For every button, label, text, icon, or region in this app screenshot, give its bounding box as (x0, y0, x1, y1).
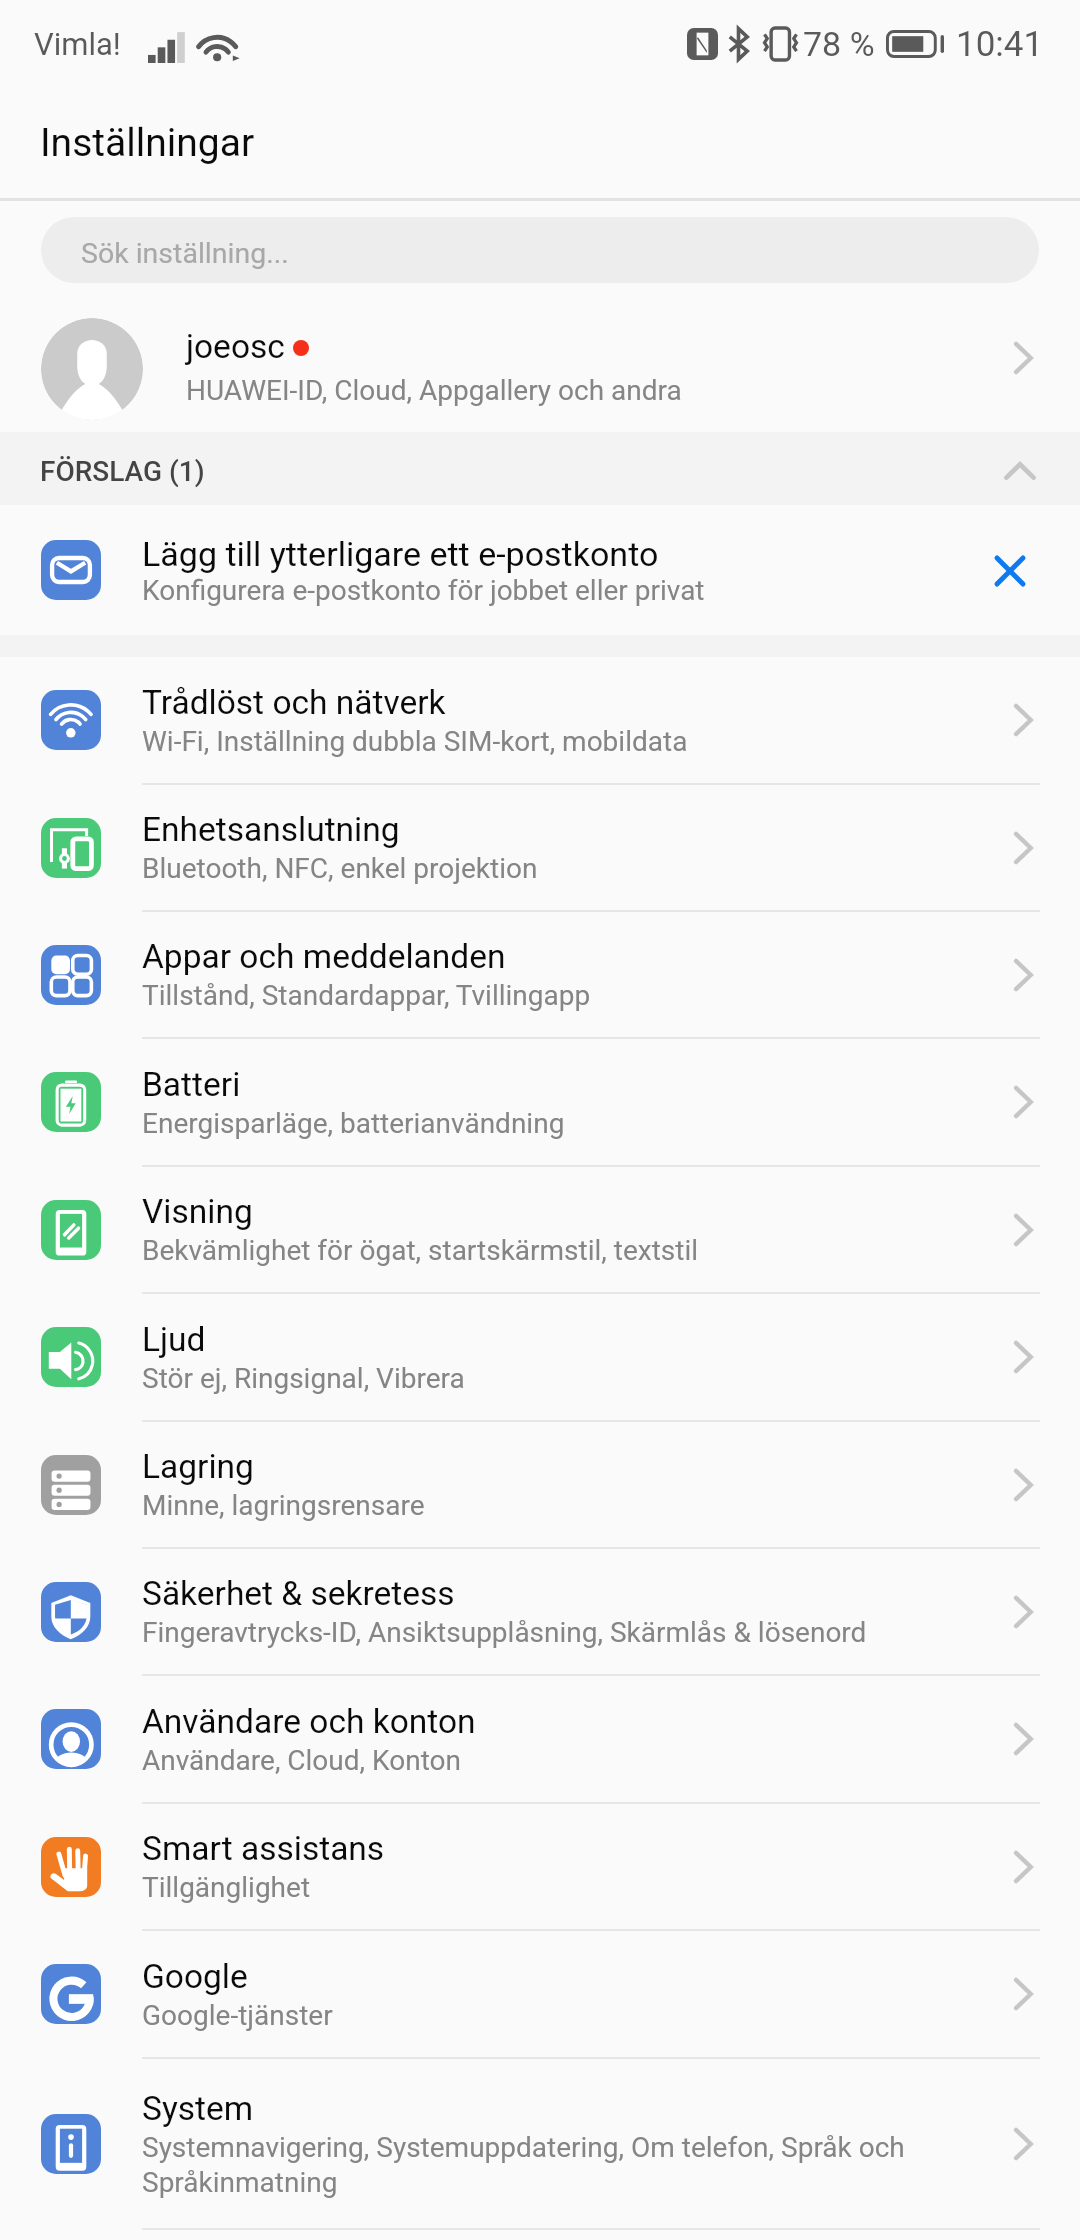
staticText: Konfigurera e-postkonto för jobbet eller… (142, 574, 705, 607)
staticText: Visning (142, 1192, 253, 1231)
button[interactable]: Visning (0, 1167, 1080, 1292)
staticText: Systemnavigering, Systemuppdatering, Om … (142, 2131, 1004, 2199)
staticText: Lagring (142, 1447, 254, 1486)
staticText: Vimla! (34, 26, 121, 62)
button[interactable]: System (0, 2059, 1080, 2228)
staticText: Tillstånd, Standardappar, Tvillingapp (142, 979, 591, 1012)
staticText: Google (142, 1957, 248, 1996)
staticText: Trådlöst och nätverk (142, 683, 446, 722)
staticText: joeosc (186, 327, 285, 366)
button[interactable]: Lagring (0, 1422, 1080, 1547)
staticText: Minne, lagringsrensare (142, 1489, 425, 1522)
button[interactable]: Stäng (964, 525, 1055, 616)
staticText: Fingeravtrycks-ID, Ansiktsupplåsning, Sk… (142, 1616, 867, 1649)
button[interactable]: Användare och konton (0, 1676, 1080, 1802)
staticText: Ljud (142, 1320, 206, 1359)
staticText: Sök inställning... (81, 237, 289, 270)
staticText: Appar och meddelanden (142, 937, 506, 976)
staticText: Enhetsanslutning (142, 810, 400, 849)
other: Fäll ihop (1004, 462, 1036, 480)
button[interactable]: joeosc (0, 283, 1080, 432)
button[interactable]: Lägg till ytterligare ett e-postkonto (0, 505, 1080, 635)
button[interactable]: Batteri (0, 1039, 1080, 1165)
staticText: 78 % (803, 24, 875, 64)
staticText: System (142, 2089, 254, 2128)
staticText: Användare och konton (142, 1702, 476, 1741)
staticText: Energisparläge, batterianvändning (142, 1107, 565, 1140)
staticText: Wi-Fi, Inställning dubbla SIM-kort, mobi… (142, 725, 688, 758)
staticText: Bekvämlighet för ögat, startskärmstil, t… (142, 1234, 699, 1267)
button[interactable]: Google (0, 1931, 1080, 2057)
staticText: Inställningar (40, 120, 255, 166)
staticText: Stör ej, Ringsignal, Vibrera (142, 1362, 465, 1395)
staticText: Lägg till ytterligare ett e-postkonto (142, 534, 659, 574)
staticText: HUAWEI-ID, Cloud, Appgallery och andra (186, 374, 682, 407)
staticText: Google-tjänster (142, 1999, 333, 2032)
staticText: 10:41 (956, 24, 1044, 65)
button[interactable]: FÖRSLAG (1) (0, 432, 1080, 505)
button[interactable]: Appar och meddelanden (0, 912, 1080, 1037)
staticText: Bluetooth, NFC, enkel projektion (142, 852, 538, 885)
staticText: FÖRSLAG (1) (40, 455, 205, 488)
staticText: Batteri (142, 1065, 241, 1104)
button[interactable]: Sök inställning... (41, 217, 1039, 283)
button[interactable]: Enhetsanslutning (0, 785, 1080, 910)
button[interactable]: Trådlöst och nätverk (0, 657, 1080, 783)
staticText: Tillgänglighet (142, 1871, 311, 1904)
button[interactable]: Smart assistans (0, 1804, 1080, 1929)
button[interactable]: Säkerhet & sekretess (0, 1549, 1080, 1674)
button[interactable]: Ljud (0, 1294, 1080, 1420)
staticText: Användare, Cloud, Konton (142, 1744, 461, 1777)
staticText: Säkerhet & sekretess (142, 1574, 455, 1613)
staticText: Smart assistans (142, 1829, 385, 1868)
